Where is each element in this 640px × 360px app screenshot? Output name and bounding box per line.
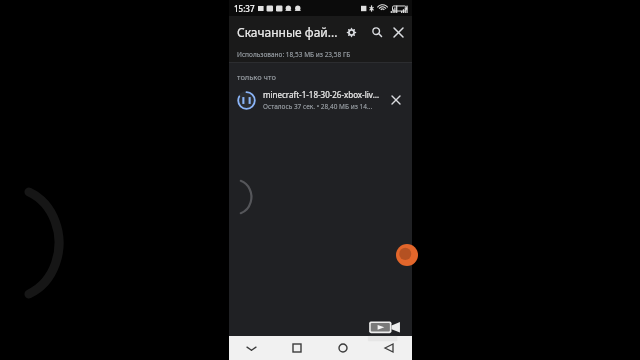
button[interactable]: Search [364, 19, 390, 45]
button[interactable]: minecraft-1-18-30-26-xbox-live.... [229, 82, 412, 118]
staticText: minecraft-1-18-30-26-xbox-live.... [263, 89, 380, 100]
button[interactable]: Cancel download [384, 88, 408, 112]
staticText: Осталось 37 сек. • 28,40 МБ из 14... [263, 102, 373, 111]
button[interactable]: Hide keyboard [229, 336, 274, 360]
button[interactable]: Recent apps [274, 336, 320, 360]
staticText: только что [237, 72, 276, 82]
button[interactable]: Close [390, 19, 407, 45]
staticText: 15:37 [234, 3, 255, 14]
staticText: Скачанные фай... [237, 24, 338, 40]
button[interactable]: Screen recorder [367, 320, 403, 348]
button[interactable]: Back [366, 336, 412, 360]
button[interactable]: Settings [338, 19, 364, 45]
staticText: Использовано: 18,53 МБ из 23,58 ГБ [237, 50, 351, 59]
button[interactable]: Home [320, 336, 366, 360]
